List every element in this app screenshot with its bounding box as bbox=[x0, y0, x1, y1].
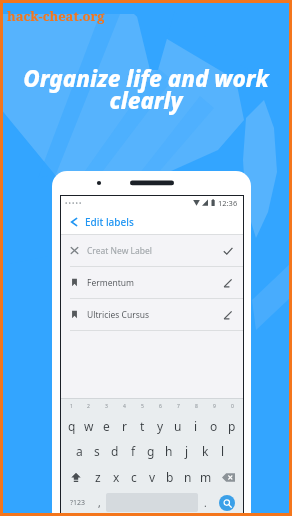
staticText: d bbox=[111, 443, 119, 459]
staticText: v bbox=[149, 469, 156, 485]
button[interactable]: u bbox=[169, 414, 187, 438]
staticText: k bbox=[202, 443, 209, 459]
staticText: Edit labels bbox=[85, 215, 134, 229]
button[interactable]: b bbox=[161, 464, 179, 490]
staticText: j bbox=[185, 443, 189, 459]
staticText: Organize life and work clearly bbox=[0, 63, 292, 116]
staticText: 6 bbox=[159, 403, 162, 410]
button[interactable]: Back bbox=[61, 209, 243, 234]
staticText: x bbox=[113, 469, 120, 485]
button[interactable]: Backspace bbox=[215, 464, 241, 490]
button[interactable]: y bbox=[151, 414, 169, 438]
staticText: 1 bbox=[70, 403, 73, 410]
staticText: u bbox=[174, 418, 182, 434]
other: Back bbox=[68, 216, 80, 228]
button[interactable]: s bbox=[88, 438, 106, 464]
button[interactable]: Search bbox=[212, 490, 241, 515]
button[interactable]: c bbox=[125, 464, 143, 490]
button[interactable]: t bbox=[133, 414, 151, 438]
button[interactable]: z bbox=[89, 464, 107, 490]
staticText: z bbox=[95, 469, 101, 485]
button[interactable]: Shift bbox=[63, 464, 89, 490]
staticText: f bbox=[131, 443, 136, 459]
button[interactable]: v bbox=[143, 464, 161, 490]
button[interactable]: Fermentum bbox=[61, 267, 243, 299]
staticText: b bbox=[166, 469, 174, 485]
button[interactable]: Creat New Label bbox=[61, 235, 243, 267]
staticText: 9 bbox=[213, 403, 216, 410]
staticText: y bbox=[157, 418, 164, 434]
button[interactable]: r bbox=[115, 414, 133, 438]
button[interactable]: , bbox=[92, 490, 106, 515]
staticText: ?123 bbox=[70, 498, 86, 508]
button[interactable]: n bbox=[179, 464, 197, 490]
staticText: , bbox=[98, 496, 101, 510]
staticText: s bbox=[94, 443, 100, 459]
staticText: Ultricies Cursus bbox=[87, 309, 150, 321]
staticText: Creat New Label bbox=[87, 245, 152, 257]
button[interactable]: x bbox=[107, 464, 125, 490]
button[interactable]: h bbox=[160, 438, 178, 464]
staticText: . bbox=[204, 496, 207, 510]
staticText: w bbox=[84, 418, 94, 434]
button[interactable]: p bbox=[223, 414, 241, 438]
staticText: 2 bbox=[87, 403, 90, 410]
staticText: 0 bbox=[231, 403, 234, 410]
staticText: l bbox=[221, 443, 225, 459]
button[interactable]: g bbox=[142, 438, 160, 464]
staticText: r bbox=[122, 418, 127, 434]
staticText: g bbox=[147, 443, 155, 459]
button[interactable]: e bbox=[97, 414, 115, 438]
staticText: n bbox=[184, 469, 192, 485]
staticText: 3 bbox=[105, 403, 108, 410]
button[interactable]: l bbox=[214, 438, 232, 464]
staticText: o bbox=[210, 418, 218, 434]
button[interactable]: j bbox=[178, 438, 196, 464]
staticText: 4 bbox=[123, 403, 126, 410]
staticText: i bbox=[194, 418, 198, 434]
staticText: m bbox=[200, 469, 212, 485]
staticText: Fermentum bbox=[87, 277, 134, 289]
staticText: 5 bbox=[141, 403, 144, 410]
staticText: p bbox=[228, 418, 236, 434]
button[interactable]: . bbox=[198, 490, 212, 515]
button[interactable]: Ultricies Cursus bbox=[61, 299, 243, 331]
button[interactable]: d bbox=[106, 438, 124, 464]
staticText: 7 bbox=[177, 403, 180, 410]
button[interactable]: o bbox=[205, 414, 223, 438]
staticText: 8 bbox=[195, 403, 198, 410]
staticText: q bbox=[68, 418, 76, 434]
button[interactable]: f bbox=[124, 438, 142, 464]
staticText: c bbox=[131, 469, 137, 485]
button[interactable]: w bbox=[80, 414, 97, 438]
staticText: e bbox=[103, 418, 110, 434]
staticText: a bbox=[76, 443, 83, 459]
button[interactable]: i bbox=[187, 414, 205, 438]
button[interactable]: m bbox=[197, 464, 215, 490]
button[interactable]: a bbox=[71, 438, 88, 464]
staticText: 12:36 bbox=[218, 198, 238, 208]
button[interactable]: q bbox=[63, 414, 80, 438]
staticText: hack-cheat.org bbox=[7, 7, 105, 25]
button[interactable]: k bbox=[196, 438, 214, 464]
button[interactable]: ?123 bbox=[63, 490, 92, 515]
staticText: h bbox=[165, 443, 173, 459]
staticText: t bbox=[140, 418, 145, 434]
